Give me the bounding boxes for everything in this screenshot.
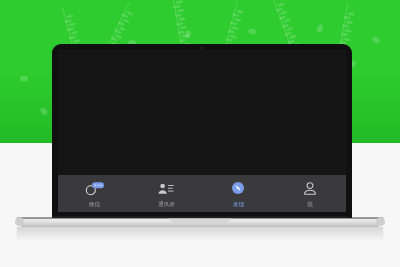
staticText: 我 [307,201,313,208]
other: 我 [300,179,320,199]
button[interactable]: 微信 [58,175,130,212]
staticText: 微信 [89,201,100,208]
button[interactable]: 我 [274,175,346,212]
button[interactable]: 发现 [202,175,274,212]
button[interactable]: 通讯录 [130,175,202,212]
other: 微信 [84,179,104,199]
staticText: 通讯录 [158,201,175,208]
other: 通讯录 [156,179,176,199]
other: 发现 [228,179,248,199]
staticText: 发现 [233,201,244,208]
